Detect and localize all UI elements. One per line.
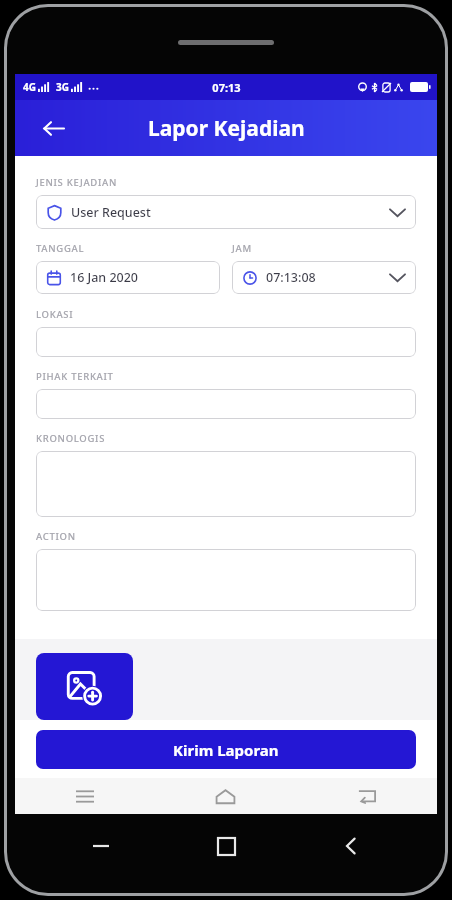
staticText: User Request — [71, 204, 151, 221]
button[interactable]: Add photo — [36, 653, 133, 720]
staticText: TANGGAL — [36, 242, 85, 255]
staticText: 16 Jan 2020 — [70, 269, 139, 286]
button[interactable] — [36, 549, 416, 611]
staticText: PIHAK TERKAIT — [36, 370, 114, 383]
button[interactable] — [36, 327, 416, 357]
button[interactable]: Back — [327, 822, 375, 870]
button[interactable]: 07:13:08 — [232, 261, 416, 294]
button[interactable]: Home — [155, 778, 296, 814]
staticText: 07:13:08 — [266, 269, 316, 286]
staticText: 07:13 — [212, 80, 241, 95]
button[interactable] — [36, 451, 416, 517]
button[interactable]: 16 Jan 2020 — [36, 261, 220, 294]
staticText: 3G — [56, 80, 69, 94]
button[interactable]: Back — [35, 110, 71, 146]
staticText: JENIS KEJADIAN — [36, 176, 118, 189]
button[interactable] — [36, 389, 416, 419]
staticText: 4G — [23, 80, 36, 94]
staticText: Lapor Kejadian — [148, 114, 305, 143]
staticText: JAM — [232, 242, 252, 255]
button[interactable]: User Request — [36, 195, 416, 229]
staticText: Kirim Laporan — [173, 740, 279, 760]
button[interactable]: Recents — [77, 822, 125, 870]
staticText: ACTION — [36, 530, 76, 543]
button[interactable]: Back — [296, 778, 437, 814]
staticText: KRONOLOGIS — [36, 432, 106, 445]
button[interactable]: Home — [202, 822, 250, 870]
button[interactable]: Menu — [15, 778, 155, 814]
staticText: LOKASI — [36, 308, 74, 321]
button[interactable]: Kirim Laporan — [36, 730, 416, 769]
